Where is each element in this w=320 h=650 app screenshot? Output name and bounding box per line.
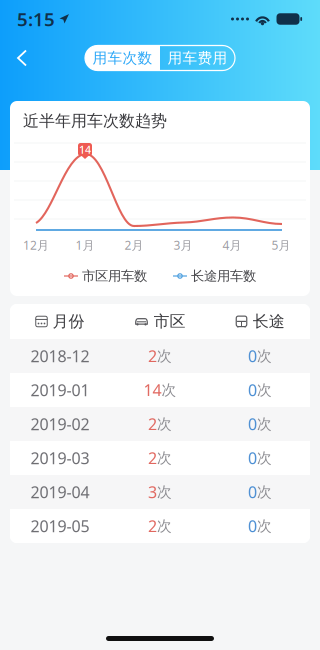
staticText: 次 (257, 347, 272, 365)
staticText: 0 (248, 413, 257, 435)
staticText: 2 (148, 447, 157, 469)
staticText: 用车费用 (167, 49, 227, 67)
staticText: 次 (157, 449, 172, 467)
staticText: 次 (257, 517, 272, 535)
staticText: 2019-02 (30, 413, 89, 435)
staticText: 4月 (222, 237, 241, 253)
staticText: 12月 (23, 237, 49, 253)
staticText: 0 (248, 447, 257, 469)
button[interactable]: 用车费用 (160, 45, 235, 70)
button[interactable]: Back (0, 38, 44, 78)
staticText: 5月 (271, 237, 290, 253)
staticText: 长途用车数 (191, 268, 256, 284)
staticText: 5:15 (17, 7, 55, 31)
staticText: 14 (79, 142, 91, 157)
staticText: 14 (143, 379, 161, 401)
staticText: 0 (248, 345, 257, 367)
staticText: 2018-12 (30, 345, 89, 367)
staticText: 次 (257, 415, 272, 433)
staticText: 市区用车数 (82, 268, 147, 284)
staticText: 次 (157, 415, 172, 433)
staticText: 3 (148, 481, 157, 503)
staticText: 3月 (173, 237, 192, 253)
staticText: 0 (248, 379, 257, 401)
staticText: 次 (257, 483, 272, 501)
staticText: 0 (248, 515, 257, 537)
staticText: 次 (161, 381, 176, 399)
staticText: 市区 (153, 312, 185, 331)
staticText: 2019-01 (30, 379, 89, 401)
staticText: 次 (157, 517, 172, 535)
staticText: 2019-03 (30, 447, 89, 469)
staticText: 月份 (52, 312, 84, 331)
staticText: 次 (257, 381, 272, 399)
staticText: 2 (148, 413, 157, 435)
staticText: 2 (148, 515, 157, 537)
staticText: 长途 (253, 312, 285, 331)
staticText: 次 (157, 347, 172, 365)
staticText: 近半年用车次数趋势 (23, 111, 167, 131)
staticText: 2019-05 (30, 515, 89, 537)
staticText: 次 (257, 449, 272, 467)
staticText: 2019-04 (30, 481, 89, 503)
staticText: 2月 (124, 237, 143, 253)
staticText: 1月 (75, 237, 94, 253)
button[interactable]: 用车次数 (85, 45, 160, 70)
staticText: 0 (248, 481, 257, 503)
staticText: 2 (148, 345, 157, 367)
staticText: 用车次数 (92, 49, 152, 67)
staticText: 次 (157, 483, 172, 501)
